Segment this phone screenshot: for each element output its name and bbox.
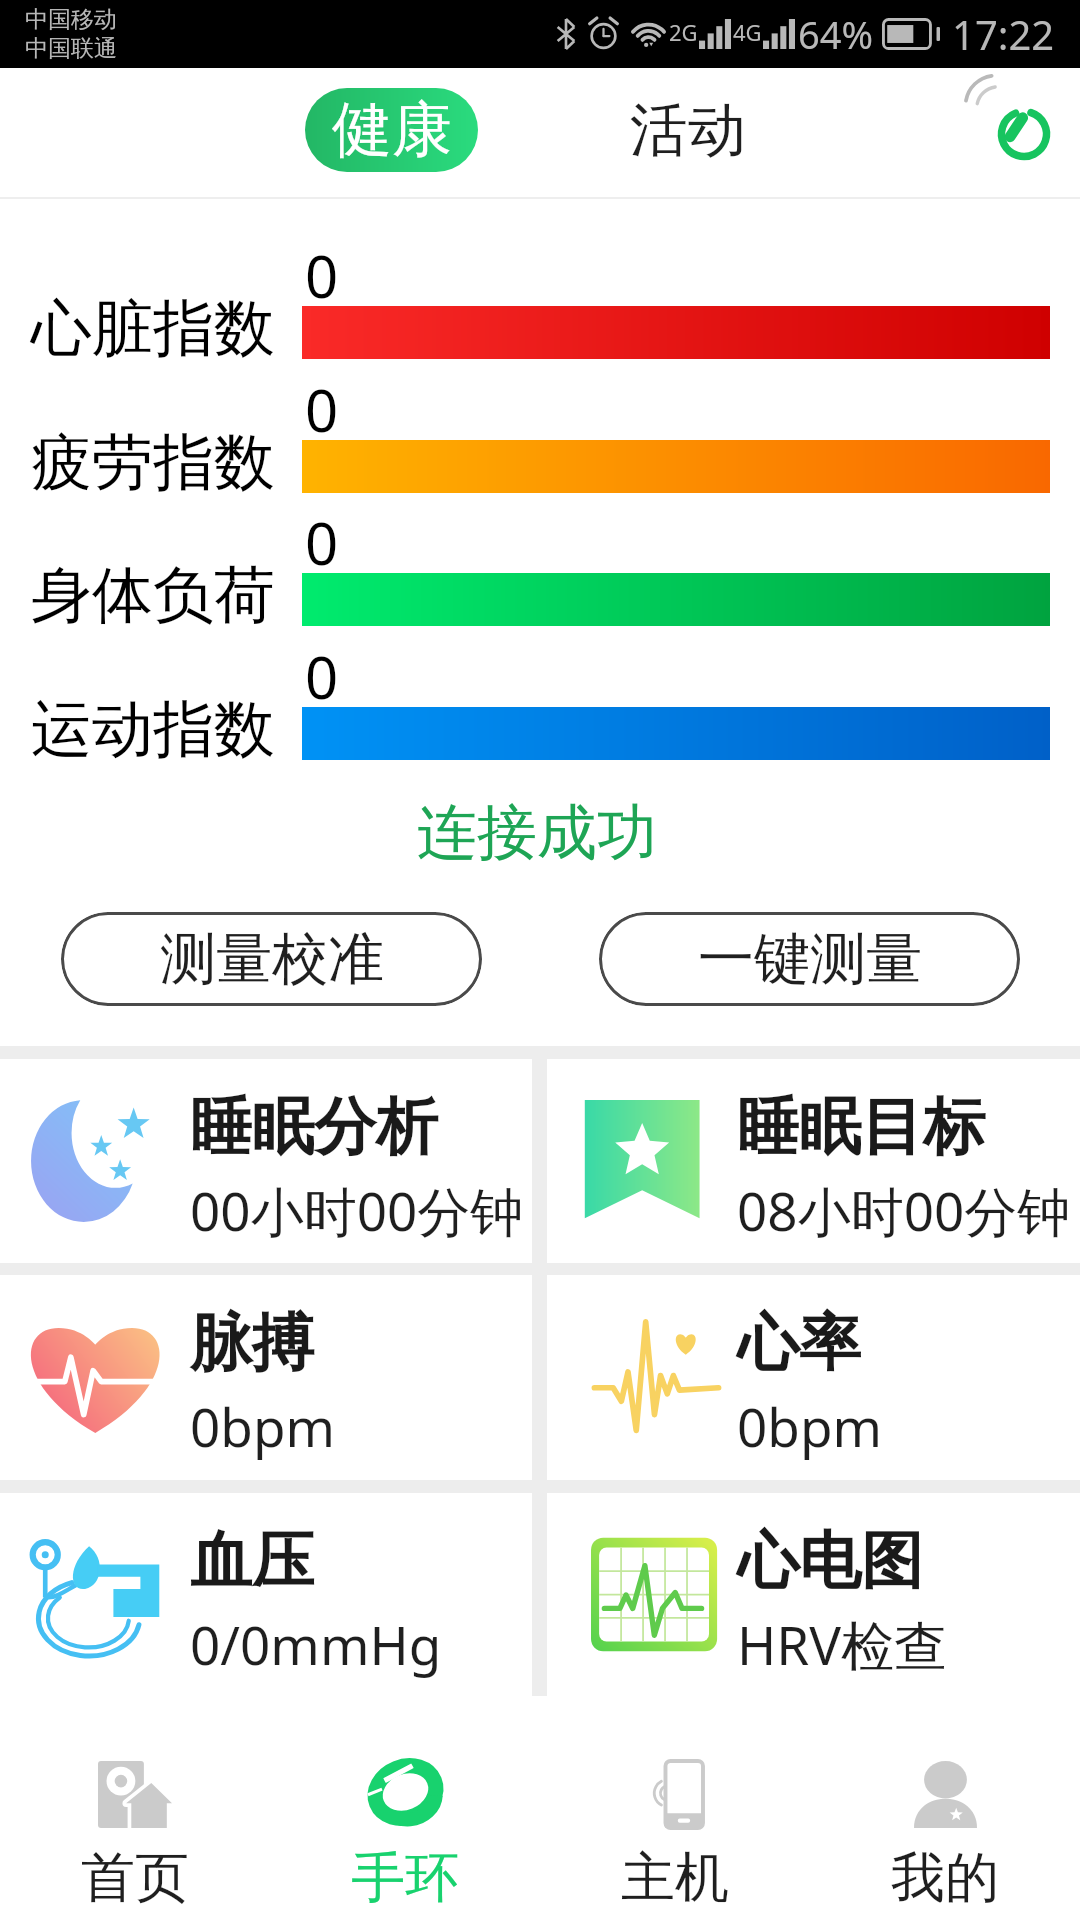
staticText: 0bpm bbox=[190, 1390, 336, 1462]
staticText: 心率 bbox=[737, 1304, 861, 1382]
staticText: 血压 bbox=[190, 1522, 314, 1600]
button[interactable]: 心电图 bbox=[547, 1493, 1080, 1696]
staticText: HRV检查 bbox=[737, 1608, 948, 1680]
staticText: 健康 bbox=[332, 92, 452, 168]
staticText: 2G bbox=[669, 17, 698, 47]
button[interactable]: 主机 bbox=[540, 1700, 810, 1920]
staticText: 首页 bbox=[81, 1844, 189, 1912]
button[interactable]: 睡眠分析 bbox=[0, 1059, 532, 1263]
staticText: 睡眠目标 bbox=[737, 1088, 985, 1166]
staticText: 4G bbox=[733, 17, 762, 47]
staticText: 中国移动 bbox=[25, 5, 117, 34]
staticText: 中国联通 bbox=[25, 34, 117, 63]
staticText: 主机 bbox=[621, 1844, 729, 1912]
staticText: 0/0mmHg bbox=[190, 1608, 442, 1680]
button[interactable]: 血压 bbox=[0, 1493, 532, 1696]
button[interactable]: 活动 bbox=[612, 90, 764, 170]
button[interactable]: 一键测量 bbox=[599, 912, 1020, 1006]
staticText: 0 bbox=[305, 236, 339, 315]
button[interactable]: 睡眠目标 bbox=[547, 1059, 1080, 1263]
button[interactable]: 脉搏 bbox=[0, 1275, 532, 1480]
staticText: 身体负荷 bbox=[31, 557, 275, 634]
staticText: 睡眠分析 bbox=[190, 1088, 438, 1166]
button[interactable]: 我的 bbox=[810, 1700, 1080, 1920]
button[interactable]: 手环 bbox=[270, 1700, 540, 1920]
button[interactable]: 健康 bbox=[305, 88, 478, 172]
staticText: 一键测量 bbox=[698, 924, 922, 995]
staticText: 连接成功 bbox=[417, 795, 657, 871]
staticText: 测量校准 bbox=[160, 924, 384, 995]
staticText: 疲劳指数 bbox=[31, 424, 275, 501]
button[interactable]: 首页 bbox=[0, 1700, 270, 1920]
staticText: 我的 bbox=[891, 1844, 999, 1912]
staticText: 活动 bbox=[630, 94, 746, 167]
staticText: 0 bbox=[305, 637, 339, 716]
button[interactable]: Sync bbox=[974, 84, 1074, 184]
staticText: 0 bbox=[305, 370, 339, 449]
staticText: 17:22 bbox=[952, 7, 1055, 61]
staticText: 00小时00分钟 bbox=[190, 1174, 524, 1246]
button[interactable]: 心率 bbox=[547, 1275, 1080, 1480]
button[interactable]: 测量校准 bbox=[61, 912, 482, 1006]
staticText: 运动指数 bbox=[31, 691, 275, 768]
staticText: 64% bbox=[798, 8, 874, 60]
staticText: 0bpm bbox=[737, 1390, 883, 1462]
staticText: 心电图 bbox=[737, 1522, 923, 1600]
staticText: 手环 bbox=[351, 1844, 459, 1912]
staticText: 08小时00分钟 bbox=[737, 1174, 1071, 1246]
staticText: 脉搏 bbox=[190, 1304, 314, 1382]
staticText: 0 bbox=[305, 503, 339, 582]
staticText: 心脏指数 bbox=[31, 290, 275, 367]
